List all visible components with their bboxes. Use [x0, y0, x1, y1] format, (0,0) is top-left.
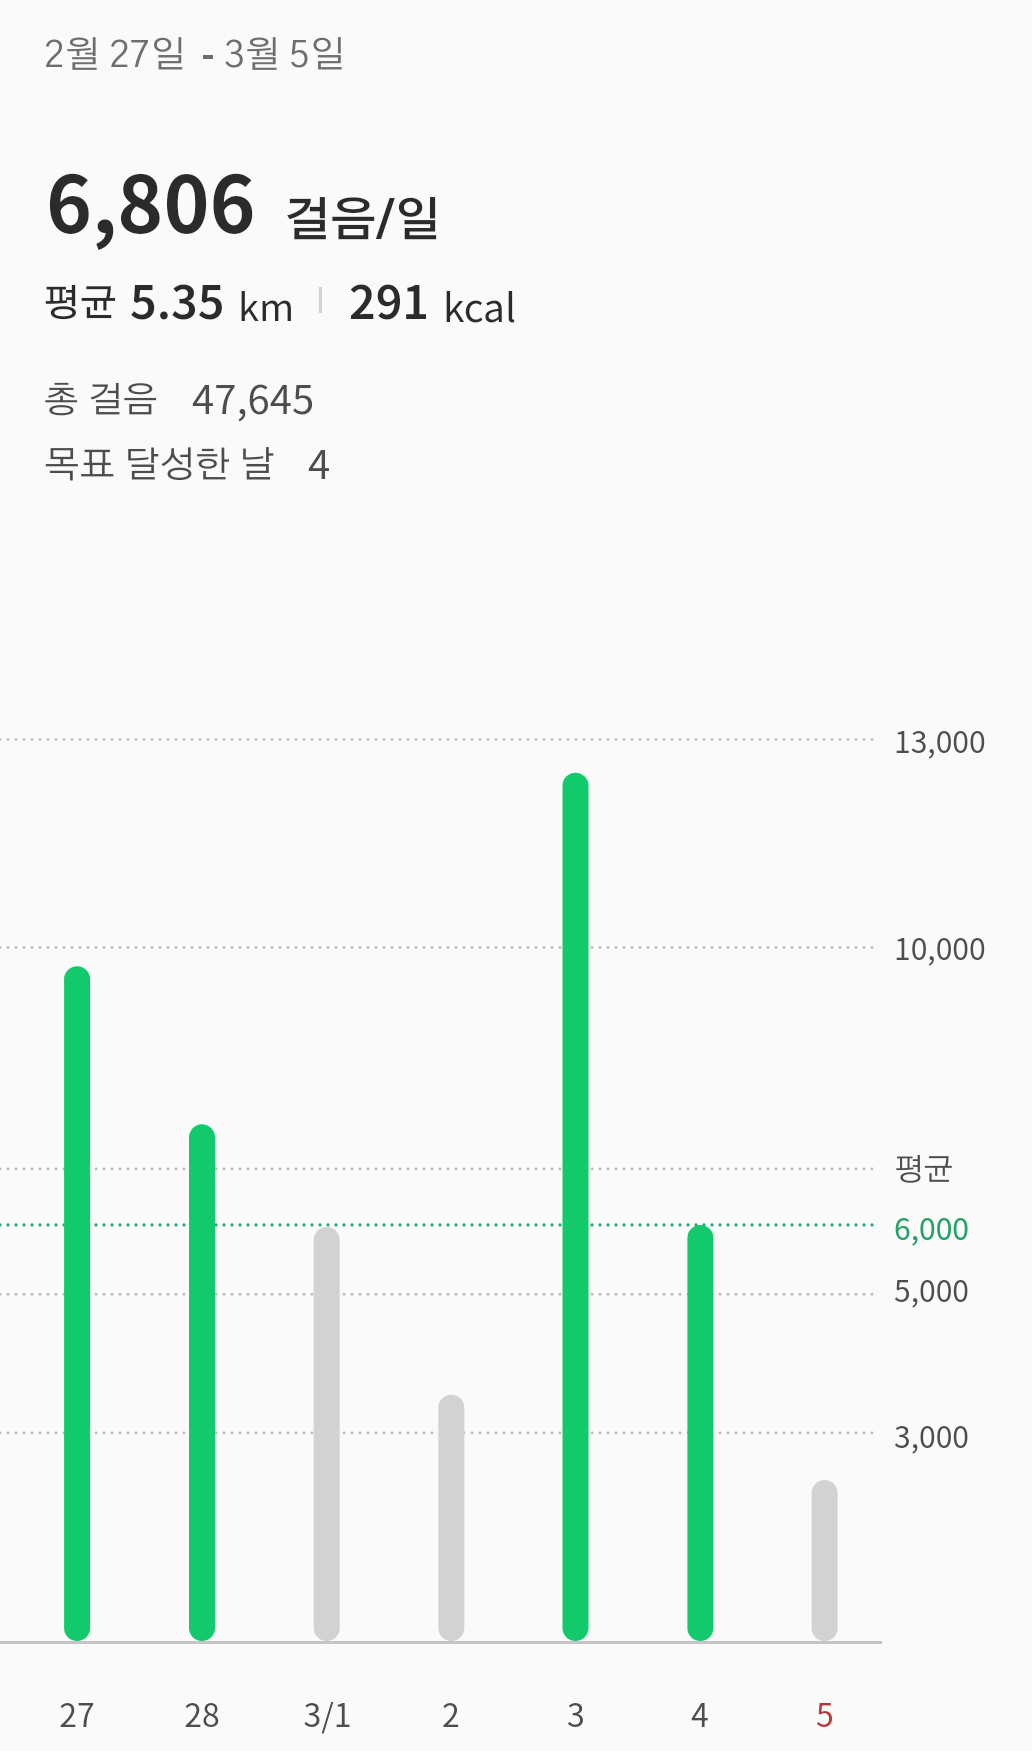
staticText: 27 — [59, 1690, 95, 1736]
staticText: 2월 27일 — [44, 37, 186, 74]
staticText: 3,000 — [894, 1413, 969, 1456]
staticText: 총 걸음 — [44, 383, 159, 420]
button[interactable]: Select date range — [34, 22, 360, 86]
staticText: 5.35 — [130, 266, 225, 333]
staticText: km — [238, 277, 295, 332]
staticText: 5 — [816, 1690, 834, 1736]
staticText: 4 — [308, 433, 331, 491]
staticText: 걸음/일 — [284, 199, 441, 246]
button[interactable]: 3/1 — [271, 1660, 383, 1744]
staticText: 3 — [567, 1690, 585, 1736]
staticText: 목표 달성한 날 — [44, 447, 276, 484]
button[interactable]: Weekly step bar chart — [0, 700, 882, 1650]
button[interactable]: 2 — [395, 1660, 507, 1744]
staticText: 47,645 — [192, 368, 315, 426]
button[interactable]: 27 — [21, 1660, 133, 1744]
staticText: 5,000 — [894, 1267, 969, 1310]
staticText: kcal — [443, 277, 517, 333]
staticText: 291 — [349, 266, 430, 333]
staticText: 6,000 — [894, 1205, 969, 1248]
staticText: 13,000 — [894, 718, 986, 761]
staticText: 4 — [691, 1690, 709, 1736]
staticText: 3/1 — [303, 1690, 352, 1736]
staticText: 28 — [184, 1690, 220, 1736]
staticText: 2 — [442, 1690, 460, 1736]
button[interactable]: 4 — [644, 1660, 756, 1744]
staticText: 6,806 — [46, 143, 256, 256]
button[interactable]: 3 — [520, 1660, 632, 1744]
staticText: 10,000 — [894, 925, 986, 968]
button[interactable]: 28 — [146, 1660, 258, 1744]
staticText: 3월 5일 — [224, 37, 346, 74]
staticText: 평균 — [894, 1155, 954, 1186]
staticText: 평균 — [43, 286, 117, 324]
button[interactable]: 5 — [769, 1660, 881, 1744]
